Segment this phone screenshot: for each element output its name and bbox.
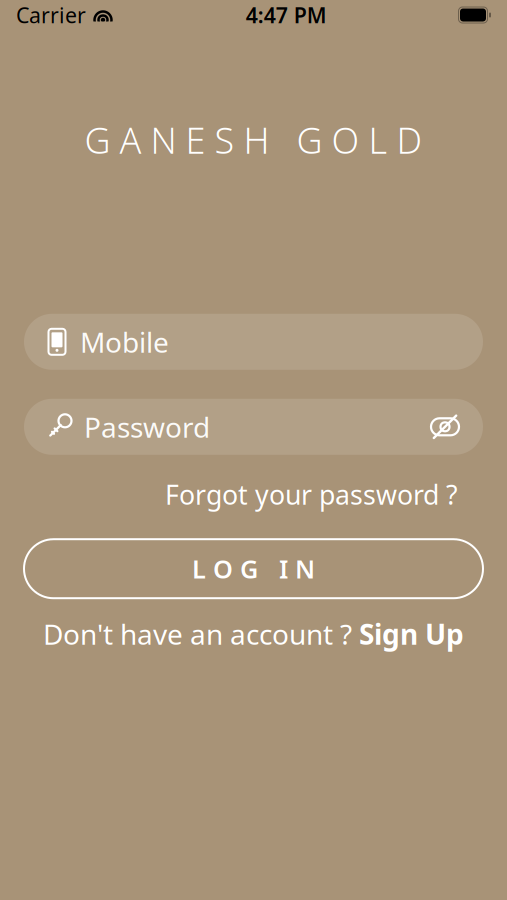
staticText: L O G I N (192, 552, 315, 585)
staticText: Sign Up (359, 615, 464, 652)
staticText: Password (84, 408, 210, 445)
staticText: Don't have an account ? (43, 615, 352, 652)
staticText: 4:47 PM (246, 1, 327, 29)
staticText: Forgot your password ? (165, 477, 458, 512)
staticText: Carrier (16, 1, 86, 29)
button[interactable]: Don't have an account ? (43, 609, 464, 658)
staticText: G A N E S H G O L D (84, 116, 422, 164)
staticText: Mobile (80, 323, 169, 360)
button[interactable]: Forgot your password ? (165, 471, 458, 518)
button[interactable]: Show password (429, 411, 461, 443)
button[interactable]: L O G I N (24, 539, 483, 598)
